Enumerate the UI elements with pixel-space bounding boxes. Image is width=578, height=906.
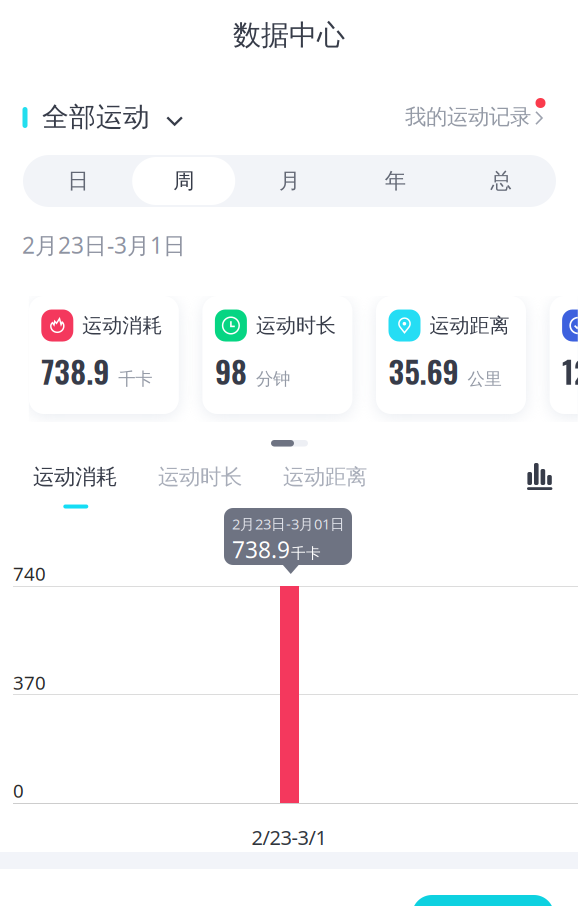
staticText: 运动消耗 — [33, 464, 117, 490]
staticText: 运动距离 — [283, 464, 367, 490]
staticText: 公里 — [467, 368, 501, 390]
button[interactable]: 运动距离 — [283, 463, 368, 491]
staticText: 周 — [173, 168, 194, 194]
staticText: 日 — [67, 168, 88, 194]
staticText: 2/23-3/1 — [251, 824, 326, 851]
staticText: 我的运动记录 — [405, 104, 531, 130]
button[interactable]: 月 — [237, 157, 342, 205]
staticText: 740 — [13, 561, 46, 586]
staticText: 运动消耗 — [82, 313, 162, 338]
button[interactable]: 全部运动 — [42, 102, 242, 132]
staticText: 2月23日-3月1日 — [22, 230, 186, 260]
staticText: 总 — [491, 168, 512, 194]
staticText: 738.9 — [232, 534, 290, 565]
button[interactable]: Chart type — [527, 463, 552, 490]
staticText: 月 — [279, 168, 300, 194]
button[interactable]: 我的运动记录 — [405, 104, 557, 130]
staticText: 运动距离 — [429, 313, 509, 338]
staticText: 运动时长 — [256, 313, 336, 338]
button[interactable]: 年 — [342, 157, 448, 205]
staticText: 2月23日-3月01日 — [232, 514, 345, 533]
button[interactable]: 总 — [448, 157, 554, 205]
button[interactable]: 运动时长 — [158, 463, 243, 491]
staticText: 年 — [385, 168, 406, 194]
button[interactable]: Start workout — [412, 895, 554, 906]
button[interactable]: 日 — [25, 157, 131, 205]
staticText: 370 — [13, 670, 46, 695]
staticText: 12 — [562, 348, 578, 394]
staticText: 0 — [13, 778, 24, 803]
button[interactable]: 运动消耗 — [29, 296, 179, 414]
staticText: 千卡 — [118, 368, 152, 390]
button[interactable]: 运动时长 — [202, 296, 352, 414]
staticText: 738.9 — [41, 348, 109, 394]
staticText: 全部运动 — [42, 101, 150, 133]
button[interactable]: 运动次数 — [550, 296, 578, 414]
staticText: 千卡 — [291, 544, 321, 562]
staticText: 分钟 — [256, 368, 290, 390]
staticText: 运动时长 — [158, 464, 242, 490]
button[interactable]: 运动消耗 — [33, 463, 118, 491]
staticText: 98 — [215, 348, 247, 394]
staticText: 35.69 — [388, 348, 458, 394]
staticText: 数据中心 — [233, 18, 345, 52]
button[interactable]: 周 — [131, 157, 237, 205]
button[interactable]: 运动距离 — [376, 296, 526, 414]
